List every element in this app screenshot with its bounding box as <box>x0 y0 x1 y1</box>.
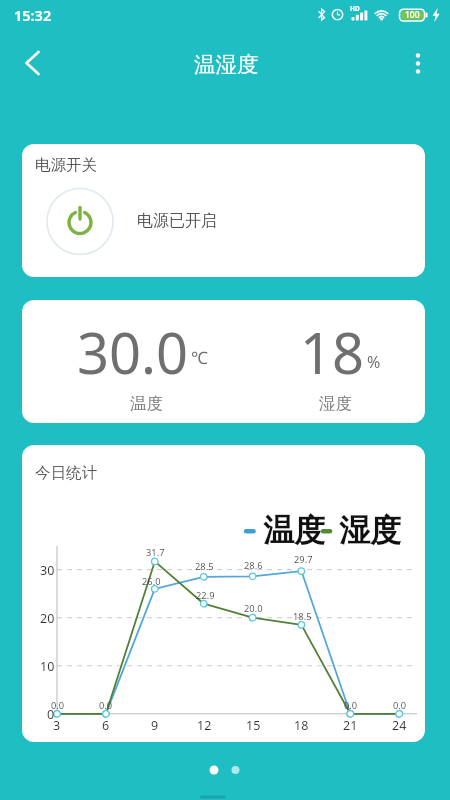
staticText: 18 <box>300 314 365 390</box>
staticText: 10 <box>40 658 55 674</box>
staticText: HD <box>350 4 360 13</box>
staticText: 0.0 <box>99 699 113 711</box>
button[interactable] <box>47 188 113 254</box>
staticText: 15:32 <box>14 5 52 25</box>
staticText: 28.6 <box>244 559 263 571</box>
staticText: 12 <box>197 717 212 733</box>
staticText: 20 <box>40 610 55 626</box>
staticText: 26.0 <box>142 575 161 587</box>
staticText: 30.0 <box>77 314 189 390</box>
staticText: 0.0 <box>393 699 407 711</box>
staticText: 31.7 <box>146 546 165 558</box>
staticText: 湿度 <box>319 393 352 414</box>
staticText: 9 <box>151 717 159 733</box>
staticText: 20.0 <box>244 602 263 614</box>
staticText: 15 <box>246 717 261 733</box>
button[interactable] <box>14 45 52 83</box>
staticText: 100 <box>405 9 420 21</box>
staticText: 0 <box>47 706 55 722</box>
staticText: 电源开关 <box>35 155 97 175</box>
staticText: 电源已开启 <box>137 211 217 231</box>
button[interactable] <box>399 45 437 83</box>
staticText: 3 <box>53 717 61 733</box>
staticText: 28.5 <box>195 560 214 572</box>
staticText: 18 <box>294 717 309 733</box>
staticText: ℃ <box>191 346 208 369</box>
staticText: 温度 <box>263 511 325 550</box>
staticText: 18.5 <box>293 610 312 622</box>
staticText: 温湿度 <box>194 51 259 78</box>
staticText: 今日统计 <box>35 463 97 483</box>
staticText: 30 <box>40 562 55 578</box>
staticText: 6 <box>102 717 110 733</box>
staticText: 0.0 <box>51 699 65 711</box>
staticText: % <box>367 351 381 373</box>
staticText: 0.0 <box>344 699 358 711</box>
staticText: 湿度 <box>339 511 401 550</box>
staticText: 21 <box>343 717 358 733</box>
staticText: 22.9 <box>196 589 215 601</box>
staticText: 29.7 <box>294 553 313 565</box>
staticText: 温度 <box>130 393 163 414</box>
staticText: 24 <box>392 717 407 733</box>
